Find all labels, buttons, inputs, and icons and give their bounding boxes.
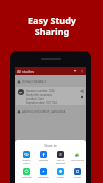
button[interactable]: WhatsApp <box>20 168 33 179</box>
button[interactable]: Save to drive <box>71 151 84 162</box>
button[interactable]: Share to phone <box>20 151 33 165</box>
staticText: Share to <box>15 144 86 148</box>
staticText: Issuance number: 1234 <box>26 89 55 93</box>
staticText: Facebook <box>37 159 50 162</box>
staticText: Easy Study Sharing <box>28 14 76 38</box>
staticText: Location: Cairo <box>26 97 45 101</box>
staticText: All studies <box>17 69 35 74</box>
staticText: Save to drive <box>71 159 84 162</box>
staticText: ABDHUL KHODMUR, LABOGINA <box>22 110 66 114</box>
staticText: Copy to clipboard <box>54 159 67 165</box>
button[interactable]: Copy to clipboard <box>54 151 67 165</box>
staticText: Messenger <box>37 176 50 179</box>
button[interactable]: Messenger <box>37 168 50 179</box>
button[interactable]: Copy <box>80 95 84 99</box>
button[interactable]: SJD <box>16 87 85 105</box>
button[interactable]: Twitter <box>54 168 67 179</box>
staticText: Study title: xxxxxxxxx <box>26 93 52 97</box>
button[interactable]: All studies <box>15 67 86 75</box>
staticText: Share to phone <box>20 159 33 165</box>
staticText: ZOHA JOHANNE Z <box>22 80 47 84</box>
staticText: Expiration date: 10/11/24 <box>26 101 57 105</box>
button[interactable]: Filter <box>73 69 77 73</box>
button[interactable]: ABDHUL KHODMUR, LABOGINA <box>17 109 86 114</box>
button[interactable]: Photos <box>71 168 84 179</box>
button[interactable]: Facebook <box>37 151 50 162</box>
staticText: Twitter <box>54 176 67 179</box>
staticText: SJD <box>19 91 23 94</box>
button[interactable]: ZOHA JOHANNE Z <box>17 79 86 84</box>
button[interactable]: Share <box>80 89 84 93</box>
button[interactable]: More options <box>80 69 84 73</box>
staticText: WhatsApp <box>20 176 33 179</box>
staticText: Photos <box>71 176 84 179</box>
